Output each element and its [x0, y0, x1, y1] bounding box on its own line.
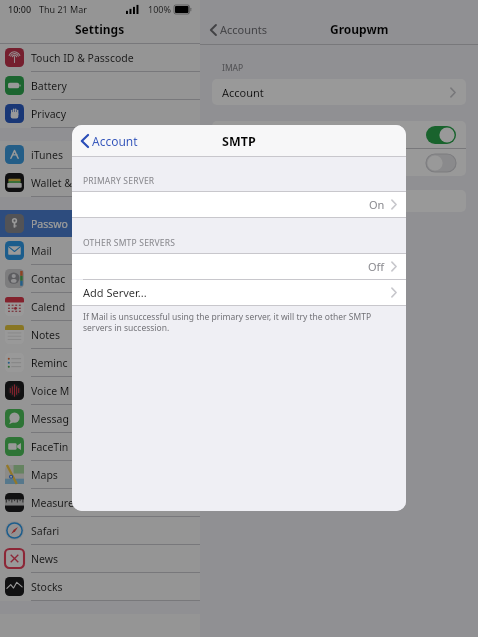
staticText: On	[369, 197, 385, 212]
button[interactable]: Maps	[0, 461, 200, 489]
staticText: Messag	[31, 412, 69, 426]
button[interactable]: Contac	[0, 265, 200, 293]
staticText: Notes	[31, 328, 61, 342]
staticText: PRIMARY SERVER	[83, 175, 155, 187]
button[interactable]: Reminc	[0, 349, 200, 377]
staticText: Battery	[31, 79, 67, 93]
staticText: Safari	[31, 524, 60, 538]
staticText: Maps	[31, 468, 58, 482]
button[interactable]: Privacy	[0, 100, 200, 128]
button[interactable]: Notes	[0, 321, 200, 349]
staticText: Accounts	[220, 22, 268, 37]
staticText: Reminc	[31, 356, 68, 370]
button[interactable]: Safari	[0, 517, 200, 545]
button[interactable]: Off	[72, 254, 406, 279]
staticText: Add Server...	[83, 285, 147, 300]
button[interactable]: Battery	[0, 72, 200, 100]
button[interactable]	[222, 149, 456, 176]
staticText: Calend	[31, 300, 66, 314]
button[interactable]: Account	[79, 129, 140, 153]
staticText: FaceTin	[31, 440, 69, 454]
staticText: Account	[222, 85, 264, 100]
button[interactable]: Stocks	[0, 573, 200, 601]
staticText: Thu 21 Mar	[39, 3, 88, 15]
button[interactable]: Wallet &	[0, 169, 200, 197]
button[interactable]: Messag	[0, 405, 200, 433]
staticText: Touch ID & Passcode	[31, 51, 134, 65]
staticText: If Mail is unsuccessful using the primar…	[83, 311, 394, 333]
staticText: Stocks	[31, 580, 63, 594]
staticText: Groupwm	[330, 21, 389, 37]
button[interactable]: Voice M	[0, 377, 200, 405]
staticText: IMAP	[222, 62, 244, 74]
button[interactable]: iTunes	[0, 141, 200, 169]
staticText: Wallet &	[31, 176, 72, 190]
staticText: 100%	[148, 3, 171, 15]
staticText: Mail	[31, 244, 52, 258]
staticText: SMTP	[222, 133, 256, 150]
button[interactable]: Measure	[0, 489, 200, 517]
staticText: iTunes	[31, 148, 63, 162]
staticText: Contac	[31, 272, 66, 286]
button[interactable]: Account	[212, 79, 466, 105]
button[interactable]: Add Server...	[72, 280, 406, 305]
staticText: Account	[92, 133, 138, 149]
button[interactable]: Touch ID & Passcode	[0, 44, 200, 72]
staticText: Passwo	[31, 217, 68, 231]
staticText: Voice M	[31, 384, 70, 398]
staticText: 10:00	[8, 3, 32, 15]
button[interactable]	[212, 190, 466, 212]
staticText: Privacy	[31, 107, 67, 121]
staticText: Settings	[75, 21, 125, 37]
button[interactable]: Mail	[0, 237, 200, 265]
button[interactable]: News	[0, 545, 200, 573]
staticText: Measure	[31, 496, 74, 510]
button[interactable]: FaceTin	[0, 433, 200, 461]
button[interactable]: On	[72, 192, 406, 217]
button[interactable]: Calend	[0, 293, 200, 321]
button[interactable]: Accounts	[208, 22, 270, 37]
staticText: News	[31, 552, 58, 566]
button[interactable]: Passwo	[0, 210, 200, 237]
staticText: Off	[368, 259, 385, 274]
staticText: OTHER SMTP SERVERS	[83, 237, 176, 249]
button[interactable]	[222, 121, 456, 148]
